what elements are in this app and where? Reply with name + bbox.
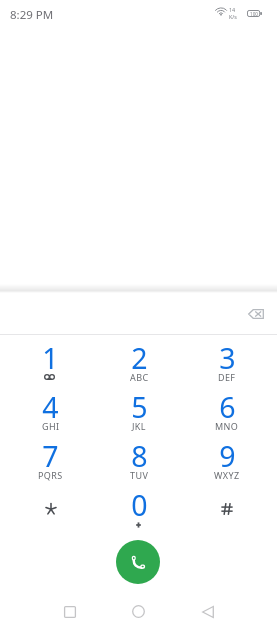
staticText: 8	[131, 437, 148, 476]
staticText: JKL	[132, 420, 146, 432]
button[interactable]: pound	[183, 483, 271, 532]
staticText: PQRS	[38, 469, 63, 481]
button[interactable]: Recent apps	[52, 594, 87, 629]
staticText: 5	[131, 388, 148, 427]
button[interactable]: 0 +	[95, 483, 183, 532]
staticText: K/s	[229, 13, 237, 20]
staticText: WXYZ	[214, 469, 240, 481]
staticText: 100	[250, 11, 258, 17]
staticText: 4	[42, 388, 59, 427]
button[interactable]: Call	[116, 540, 160, 584]
button[interactable]: 2 ABC	[95, 336, 183, 385]
staticText: 7	[42, 437, 59, 476]
button[interactable]: 6 MNO	[183, 385, 271, 434]
button[interactable]: 5 JKL	[95, 385, 183, 434]
button[interactable]: 3 DEF	[183, 336, 271, 385]
staticText: 8:29 PM	[10, 7, 54, 23]
staticText: MNO	[215, 420, 239, 432]
staticText: 2	[131, 339, 148, 378]
button[interactable]: Back	[190, 594, 225, 629]
staticText: 3	[219, 339, 236, 378]
button[interactable]: Backspace	[238, 296, 273, 331]
button[interactable]: Home	[121, 594, 156, 629]
staticText: TUV	[130, 469, 149, 481]
staticText: DEF	[218, 371, 236, 383]
staticText: 0	[131, 486, 148, 525]
button[interactable]: 7 PQRS	[6, 434, 95, 483]
staticText: 9	[219, 437, 236, 476]
staticText: ABC	[130, 371, 149, 383]
button[interactable]: 1 voicemail	[6, 336, 95, 385]
staticText: 1	[42, 339, 59, 378]
button[interactable]: 9 WXYZ	[183, 434, 271, 483]
button[interactable]: star	[6, 483, 95, 532]
staticText: 6	[219, 388, 236, 427]
staticText: GHI	[42, 420, 60, 432]
staticText: 14	[229, 6, 236, 13]
button[interactable]: 4 GHI	[6, 385, 95, 434]
button[interactable]: 8 TUV	[95, 434, 183, 483]
